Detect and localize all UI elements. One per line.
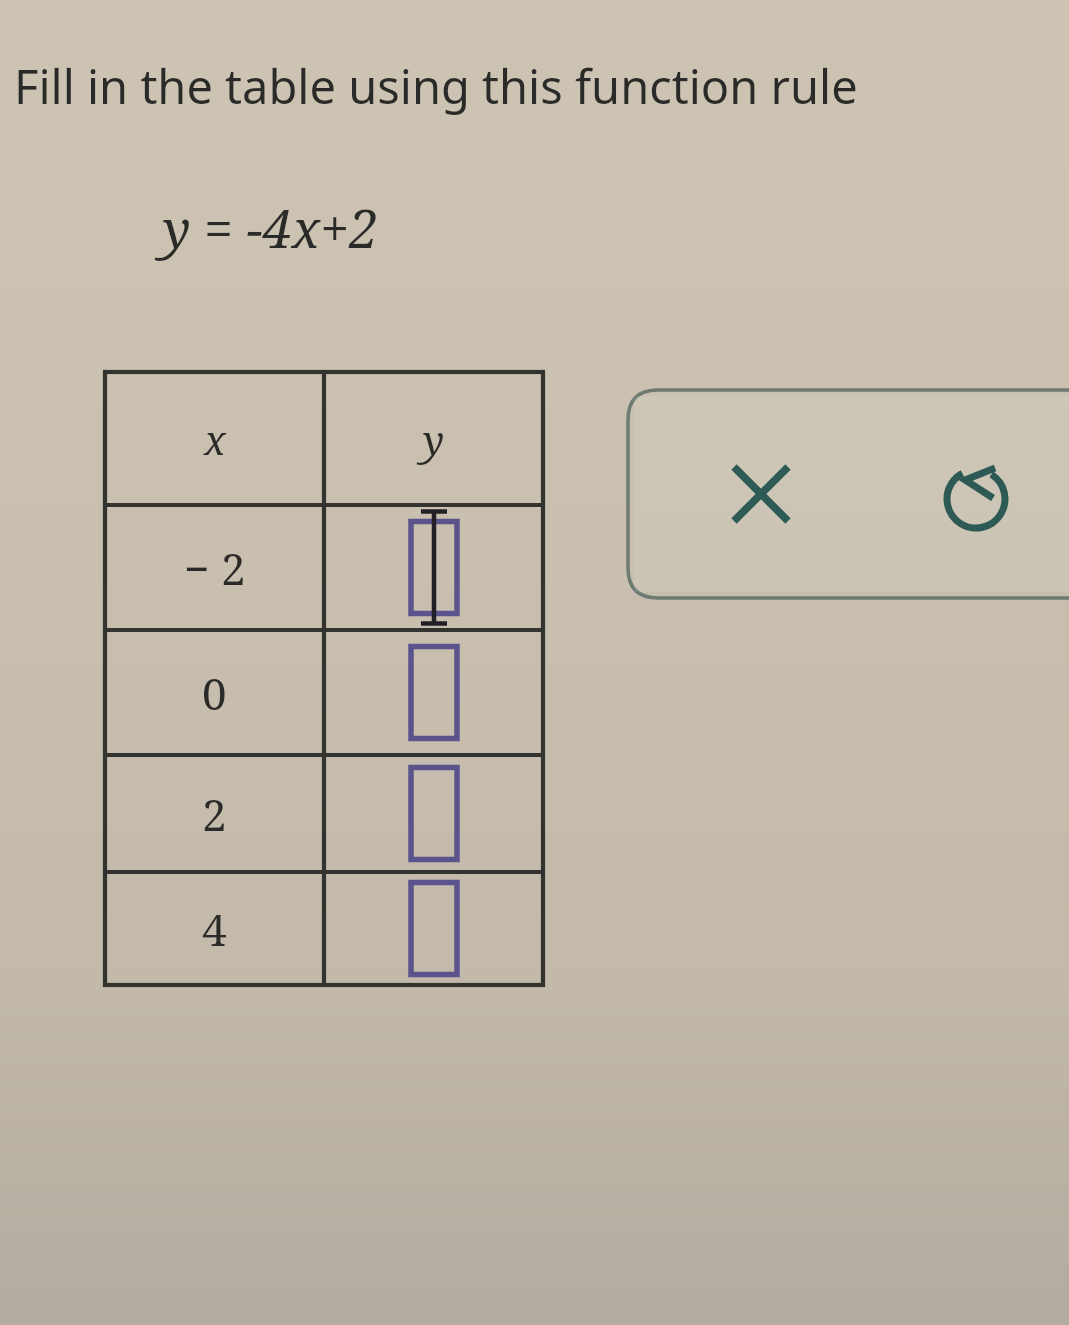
button[interactable]: Answer field 1 — [400, 511, 468, 623]
staticText: x — [204, 412, 226, 466]
staticText: − 2 — [184, 538, 246, 598]
staticText: 0 — [202, 663, 227, 723]
staticText: 2 — [202, 784, 227, 844]
button[interactable]: Answer field 3 — [400, 757, 468, 869]
staticText: Fill in the table using this function ru… — [14, 54, 858, 118]
staticText: 4 — [202, 899, 227, 959]
button[interactable]: Answer field 2 — [400, 636, 468, 748]
staticText: y = −4x+2 — [163, 192, 379, 263]
button[interactable]: Undo — [931, 454, 1021, 544]
button[interactable]: Clear — [716, 449, 806, 539]
button[interactable]: Answer field 4 — [400, 872, 468, 984]
staticText: y — [423, 412, 445, 466]
